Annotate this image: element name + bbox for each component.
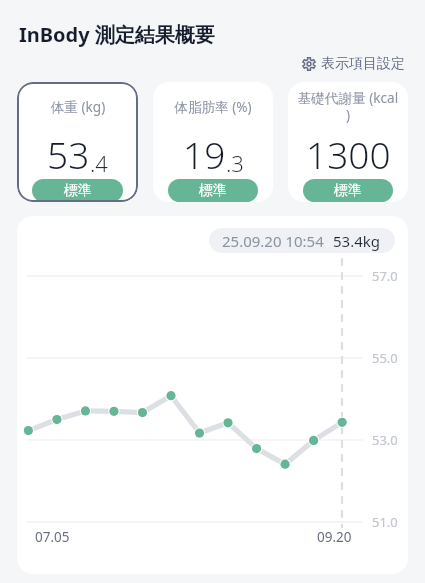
staticText: 標準 <box>64 182 92 200</box>
staticText: 体重 (kg) <box>26 97 130 116</box>
staticText: 1300 <box>306 129 391 179</box>
button[interactable]: 表示項目設定 <box>300 53 407 75</box>
staticText: 25.09.20 10:54 <box>222 231 324 251</box>
staticText: 57.0 <box>372 267 398 285</box>
button[interactable]: 標準 <box>32 179 123 202</box>
staticText: 07.05 <box>35 528 70 546</box>
button[interactable]: 標準 <box>303 179 393 202</box>
staticText: 09.20 <box>317 528 352 546</box>
staticText: 標準 <box>334 182 362 200</box>
staticText: 53.0 <box>372 431 398 449</box>
staticText: 19 <box>183 129 226 179</box>
staticText: 表示項目設定 <box>321 55 405 73</box>
other: 表示項目設定 <box>302 57 316 71</box>
staticText: 体脂肪率 (%) <box>161 97 265 116</box>
staticText: 55.0 <box>372 349 398 367</box>
staticText: .3 <box>226 148 244 178</box>
button[interactable]: 体脂肪率 (%) <box>153 82 273 202</box>
staticText: 標準 <box>199 182 227 200</box>
staticText: 53 <box>47 129 90 179</box>
staticText: 53.4kg <box>333 231 380 251</box>
staticText: 基礎代謝量 (kcal ) <box>288 88 408 124</box>
button[interactable]: 体重 (kg) <box>17 82 138 202</box>
button[interactable]: 標準 <box>168 179 258 202</box>
button[interactable]: 25.09.20 10:54 <box>209 228 395 253</box>
button[interactable]: 基礎代謝量 (kcal ) <box>288 82 408 202</box>
staticText: 51.0 <box>372 513 398 531</box>
staticText: InBody 測定結果概要 <box>19 21 215 48</box>
staticText: .4 <box>90 148 108 178</box>
